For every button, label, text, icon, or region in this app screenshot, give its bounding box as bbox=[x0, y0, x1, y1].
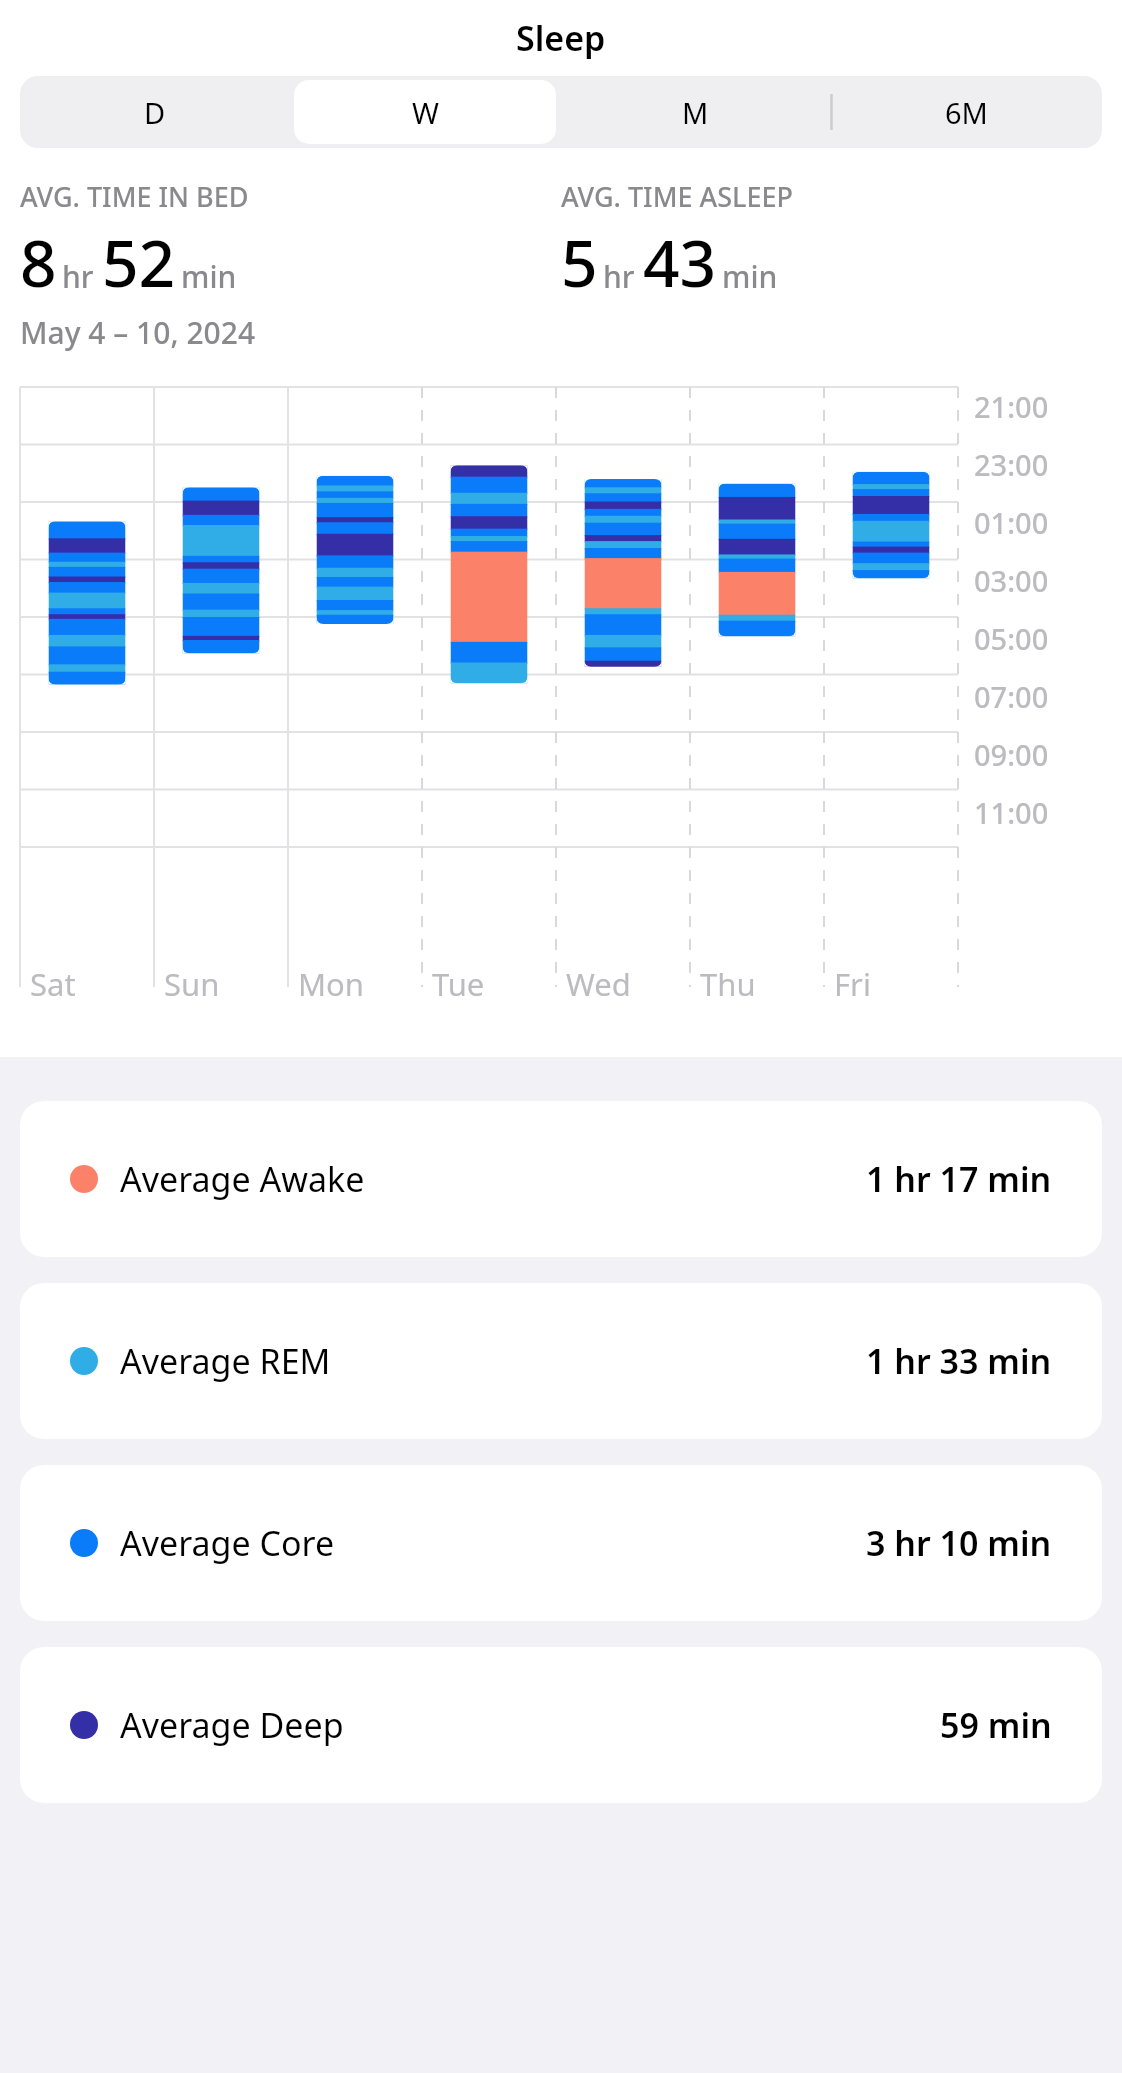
staticText: D bbox=[144, 93, 166, 132]
staticText: M bbox=[682, 93, 709, 132]
staticText: 21:00 bbox=[974, 387, 1049, 426]
button[interactable]: Average REM bbox=[20, 1283, 1102, 1439]
staticText: 11:00 bbox=[974, 793, 1049, 832]
staticText: 1 hr 33 min bbox=[866, 1338, 1052, 1384]
staticText: 23:00 bbox=[974, 445, 1049, 484]
button[interactable]: 6M bbox=[835, 80, 1098, 144]
staticText: 5 bbox=[561, 219, 598, 306]
staticText: W bbox=[412, 93, 439, 132]
staticText: Sat bbox=[30, 963, 76, 1005]
staticText: 05:00 bbox=[974, 619, 1049, 658]
staticText: 43 bbox=[643, 219, 717, 306]
staticText: Tue bbox=[432, 963, 485, 1005]
button[interactable]: M bbox=[564, 80, 827, 144]
staticText: AVG. TIME IN BED bbox=[20, 178, 249, 215]
staticText: 09:00 bbox=[974, 735, 1049, 774]
staticText: Mon bbox=[298, 963, 365, 1005]
staticText: Average Core bbox=[120, 1520, 335, 1566]
staticText: min bbox=[722, 256, 778, 297]
staticText: 8 bbox=[20, 219, 57, 306]
staticText: 03:00 bbox=[974, 561, 1049, 600]
staticText: Sleep bbox=[516, 15, 606, 61]
staticText: Thu bbox=[700, 963, 756, 1005]
staticText: 52 bbox=[102, 219, 176, 306]
staticText: 01:00 bbox=[974, 503, 1049, 542]
staticText: AVG. TIME ASLEEP bbox=[561, 178, 794, 215]
staticText: Average Awake bbox=[120, 1156, 365, 1202]
button[interactable]: Average Awake bbox=[20, 1101, 1102, 1257]
staticText: 3 hr 10 min bbox=[866, 1520, 1052, 1566]
button[interactable]: W bbox=[294, 80, 556, 144]
staticText: min bbox=[181, 256, 237, 297]
staticText: hr bbox=[603, 256, 635, 297]
staticText: Average REM bbox=[120, 1338, 331, 1384]
staticText: Average Deep bbox=[120, 1702, 344, 1748]
staticText: Wed bbox=[566, 963, 631, 1005]
button[interactable]: D bbox=[24, 80, 286, 144]
staticText: 07:00 bbox=[974, 677, 1049, 716]
staticText: May 4 – 10, 2024 bbox=[20, 312, 256, 353]
staticText: Sun bbox=[164, 963, 220, 1005]
button[interactable]: Average Deep bbox=[20, 1647, 1102, 1803]
staticText: 6M bbox=[945, 93, 988, 132]
staticText: Fri bbox=[834, 963, 871, 1005]
staticText: hr bbox=[62, 256, 94, 297]
staticText: 59 min bbox=[940, 1702, 1052, 1748]
button[interactable]: Average Core bbox=[20, 1465, 1102, 1621]
staticText: 1 hr 17 min bbox=[866, 1156, 1052, 1202]
